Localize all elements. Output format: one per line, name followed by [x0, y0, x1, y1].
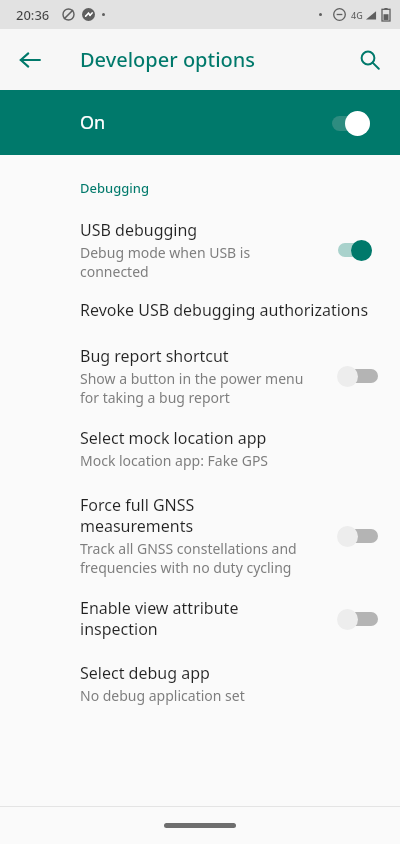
staticText: Select debug app: [80, 662, 210, 684]
button[interactable]: Enable view attribute inspection: [0, 597, 400, 640]
button[interactable]: Revoke USB debugging authorizations: [0, 299, 400, 321]
staticText: Force full GNSS measurements: [80, 494, 195, 537]
staticText: Developer options: [80, 46, 256, 73]
staticText: Select mock location app: [80, 427, 267, 449]
staticText: USB debugging: [80, 219, 198, 241]
staticText: Enable view attribute inspection: [80, 597, 239, 640]
button[interactable]: Select mock location app: [0, 427, 400, 470]
button[interactable]: USB debugging: [0, 219, 400, 281]
staticText: Revoke USB debugging authorizations: [80, 299, 369, 321]
button[interactable]: Navigate up: [6, 36, 54, 84]
staticText: 20:36: [16, 6, 50, 24]
staticText: On: [80, 110, 326, 135]
staticText: Bug report shortcut: [80, 345, 229, 367]
button[interactable]: On: [0, 90, 400, 155]
staticText: Debugging: [80, 179, 150, 197]
button[interactable]: Search: [346, 36, 394, 84]
staticText: Show a button in the power menu for taki…: [80, 369, 304, 407]
staticText: 4G: [351, 9, 363, 21]
button[interactable]: Bug report shortcut: [0, 345, 400, 407]
button[interactable]: Force full GNSS measurements: [0, 494, 400, 577]
staticText: Mock location app: Fake GPS: [80, 451, 269, 470]
staticText: No debug application set: [80, 686, 245, 705]
staticText: Debug mode when USB is connected: [80, 243, 251, 281]
staticText: Track all GNSS constellations and freque…: [80, 539, 297, 577]
button[interactable]: Select debug app: [0, 662, 400, 705]
